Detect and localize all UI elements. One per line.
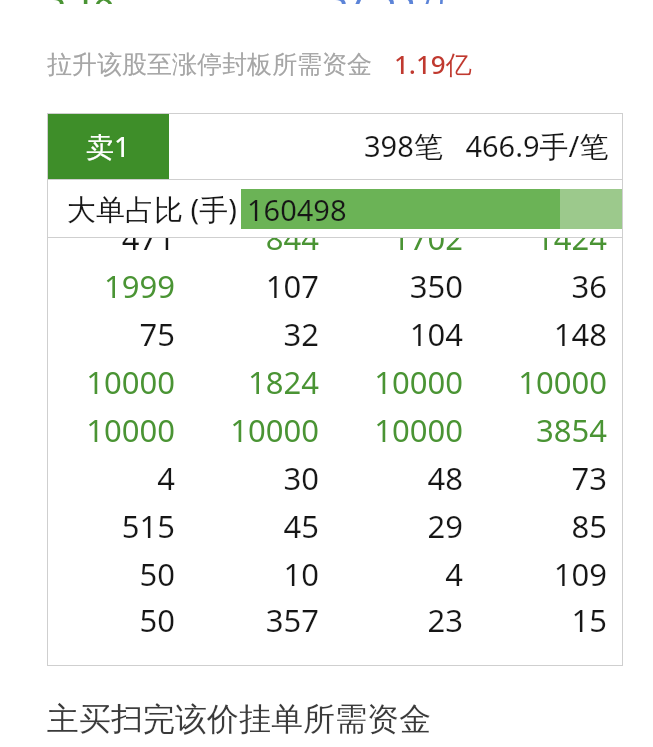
staticText: 37.55万 bbox=[328, 0, 450, 4]
staticText: 398笔 466.9手/笔 bbox=[364, 126, 609, 166]
staticText: 10000 bbox=[518, 361, 607, 403]
staticText: 32 bbox=[283, 313, 319, 355]
staticText: 73 bbox=[571, 457, 607, 499]
staticText: 29 bbox=[427, 505, 463, 547]
staticText: 160498 bbox=[247, 190, 347, 229]
staticText: 48 bbox=[427, 457, 463, 499]
staticText: 50 bbox=[139, 553, 175, 595]
staticText: 357 bbox=[265, 599, 319, 641]
staticText: 50 bbox=[139, 599, 175, 641]
staticText: 拉升该股至涨停封板所需资金 bbox=[47, 49, 372, 80]
button[interactable]: 471 bbox=[47, 238, 623, 262]
button[interactable]: 1999 bbox=[47, 262, 623, 310]
staticText: 75 bbox=[139, 313, 175, 355]
staticText: 1424 bbox=[536, 238, 607, 259]
button[interactable]: 515 bbox=[47, 502, 623, 550]
button[interactable]: 大单占比 (手) bbox=[47, 180, 623, 237]
button[interactable]: 50 bbox=[47, 598, 623, 642]
staticText: 515 bbox=[121, 505, 175, 547]
staticText: 卖1 bbox=[86, 127, 131, 165]
staticText: 大单占比 (手) bbox=[67, 189, 237, 229]
staticText: 10000 bbox=[86, 409, 175, 451]
staticText: 1999 bbox=[104, 265, 175, 307]
staticText: 1702 bbox=[392, 238, 463, 259]
staticText: 10000 bbox=[374, 409, 463, 451]
staticText: 1824 bbox=[248, 361, 319, 403]
staticText: 350 bbox=[409, 265, 463, 307]
button[interactable]: 50 bbox=[47, 550, 623, 598]
staticText: 10000 bbox=[86, 361, 175, 403]
button[interactable]: 卖1 bbox=[47, 113, 623, 179]
staticText: 30 bbox=[283, 457, 319, 499]
staticText: 15 bbox=[571, 599, 607, 641]
button[interactable]: 10000 bbox=[47, 406, 623, 454]
staticText: 主买扫完该价挂单所需资金 bbox=[47, 699, 431, 739]
staticText: 471 bbox=[121, 238, 175, 259]
staticText: 23 bbox=[427, 599, 463, 641]
button[interactable]: 4 bbox=[47, 454, 623, 502]
staticText: 3.18 bbox=[46, 0, 114, 4]
staticText: 10 bbox=[283, 553, 319, 595]
staticText: 104 bbox=[409, 313, 463, 355]
staticText: 1.19亿 bbox=[394, 46, 472, 82]
staticText: 148 bbox=[553, 313, 607, 355]
staticText: 45 bbox=[283, 505, 319, 547]
button[interactable]: 75 bbox=[47, 310, 623, 358]
staticText: 36 bbox=[571, 265, 607, 307]
staticText: 85 bbox=[571, 505, 607, 547]
button[interactable]: 10000 bbox=[47, 358, 623, 406]
staticText: 10000 bbox=[230, 409, 319, 451]
staticText: 4 bbox=[157, 457, 175, 499]
staticText: 109 bbox=[553, 553, 607, 595]
staticText: 10000 bbox=[374, 361, 463, 403]
staticText: 4 bbox=[445, 553, 463, 595]
staticText: 3854 bbox=[536, 409, 607, 451]
staticText: 107 bbox=[265, 265, 319, 307]
staticText: 844 bbox=[265, 238, 319, 259]
